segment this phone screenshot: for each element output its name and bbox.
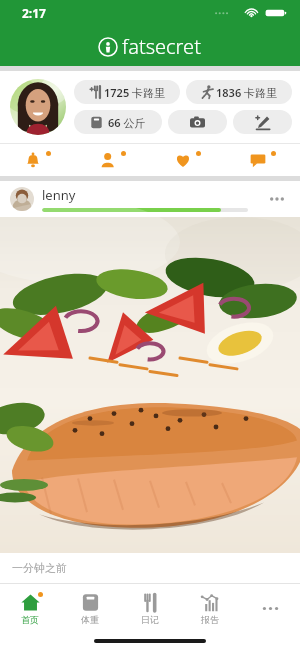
button[interactable]: Add entry (233, 110, 292, 134)
button[interactable]: 体重 (60, 584, 120, 632)
button[interactable]: Notifications (0, 144, 75, 176)
staticText: 1836 卡路里 (216, 85, 278, 100)
button[interactable]: 66 公斤 (74, 110, 162, 134)
staticText: 1725 卡路里 (104, 85, 166, 100)
button[interactable]: 1725 卡路里 (74, 80, 180, 104)
button[interactable]: Messages (225, 144, 300, 176)
button[interactable]: More options (264, 186, 290, 212)
button[interactable]: 首页 (0, 584, 60, 632)
button[interactable]: Likes (150, 144, 225, 176)
staticText: 体重 (81, 614, 99, 625)
staticText: 66 公斤 (108, 115, 146, 130)
button[interactable]: More (240, 584, 300, 632)
button[interactable]: lenny (10, 181, 290, 217)
button[interactable]: 报告 (180, 584, 240, 632)
button[interactable]: Profile photo (10, 79, 66, 135)
staticText: 首页 (21, 614, 39, 625)
button[interactable]: 1836 卡路里 (186, 80, 292, 104)
staticText: lenny (42, 186, 76, 204)
button[interactable]: Friends (75, 144, 150, 176)
staticText: 日记 (141, 614, 159, 625)
staticText: fatsecret (122, 33, 201, 60)
staticText: 报告 (201, 614, 219, 625)
button[interactable]: Take photo (168, 110, 227, 134)
staticText: 一分钟之前 (12, 561, 67, 575)
staticText: 2:17 (22, 5, 46, 21)
button[interactable]: 日记 (120, 584, 180, 632)
